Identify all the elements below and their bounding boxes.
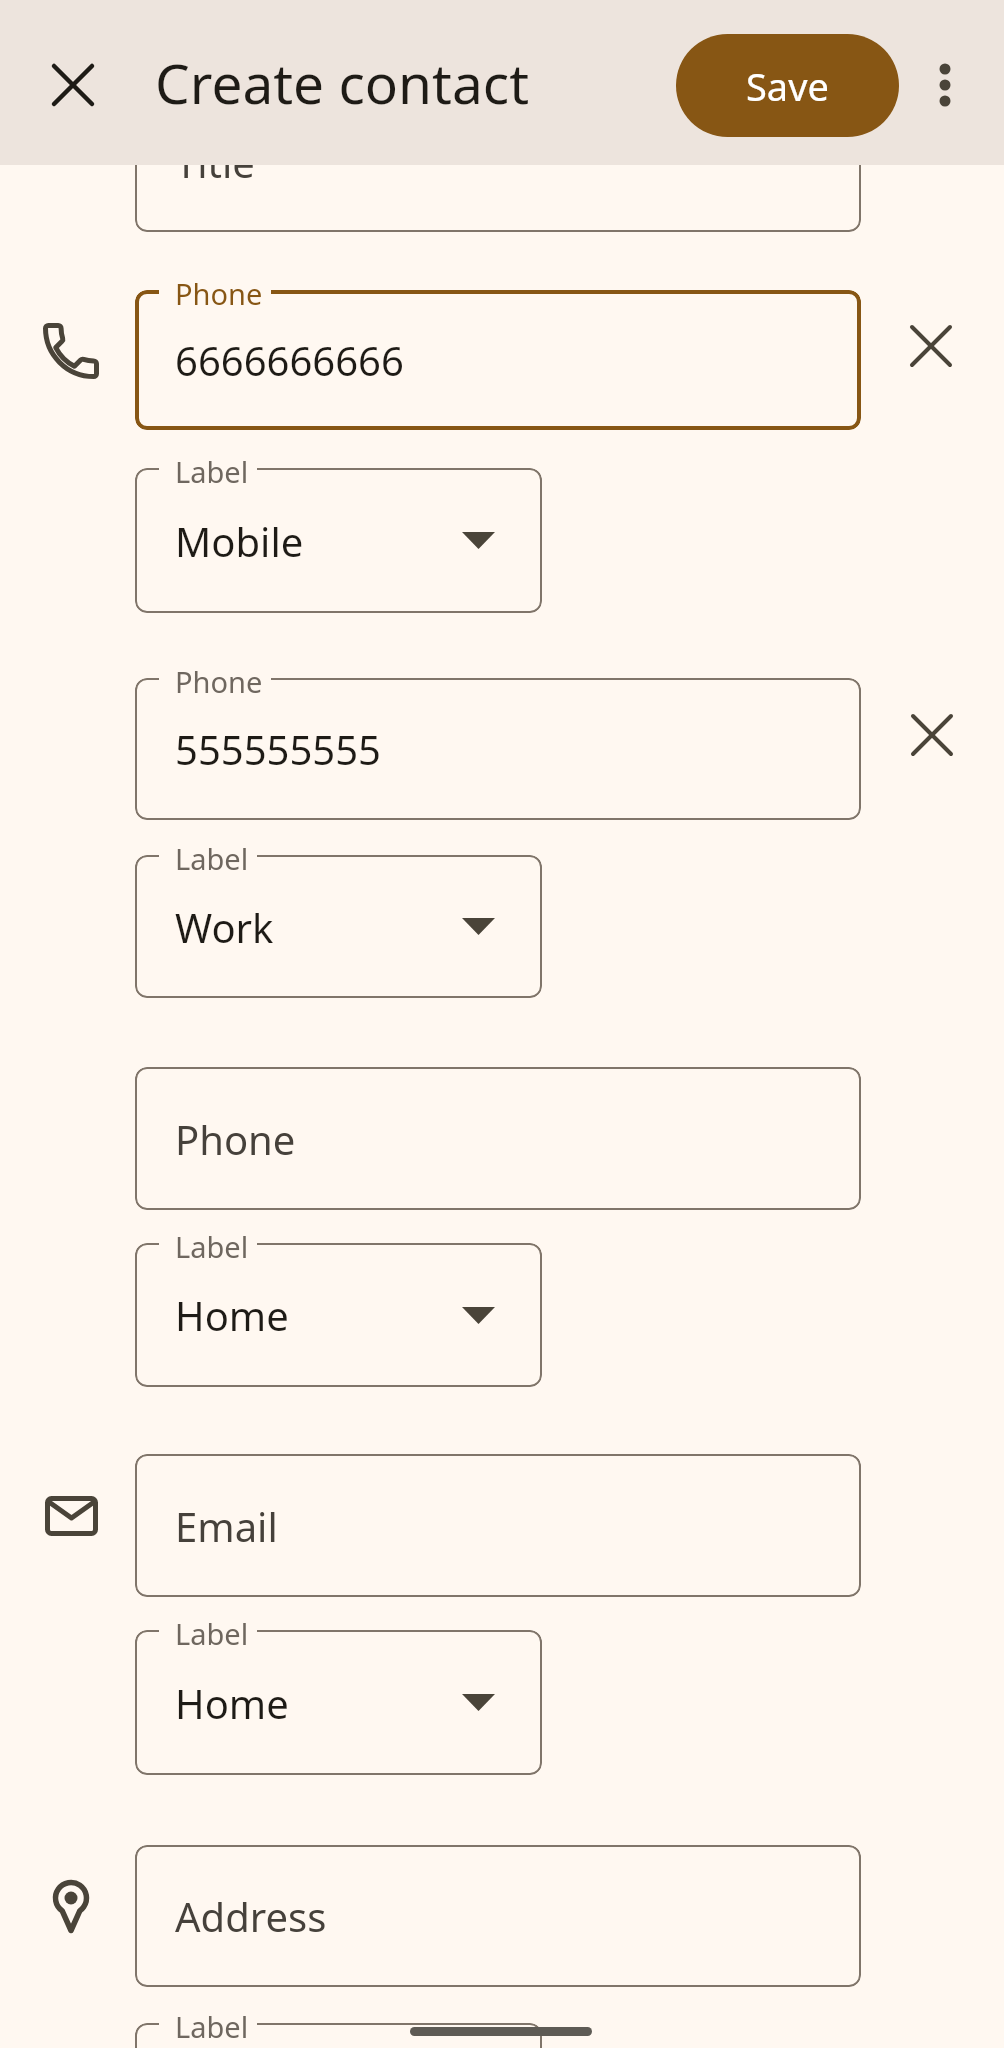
staticText: 555555555 xyxy=(175,722,381,776)
staticText: Address xyxy=(175,1889,327,1943)
button[interactable]: Work xyxy=(135,855,542,998)
staticText: Mobile xyxy=(175,514,304,568)
staticText: Label xyxy=(175,1614,249,1653)
staticText: Label xyxy=(175,452,249,491)
staticText: Label xyxy=(175,1227,249,1266)
button[interactable]: 555555555 xyxy=(135,678,861,820)
button[interactable] xyxy=(41,53,105,117)
button[interactable]: Save xyxy=(676,34,899,137)
staticText: Create contact xyxy=(155,45,530,120)
staticText: Email xyxy=(175,1499,278,1553)
staticText: Title xyxy=(175,135,255,189)
button[interactable] xyxy=(897,312,965,380)
staticText: Work xyxy=(175,900,274,954)
button[interactable]: Address xyxy=(135,1845,861,1987)
staticText: Label xyxy=(175,839,249,878)
button[interactable]: Email xyxy=(135,1454,861,1597)
button[interactable] xyxy=(898,701,966,769)
staticText: Phone xyxy=(175,274,263,313)
staticText: Save xyxy=(746,60,829,112)
button[interactable]: Mobile xyxy=(135,468,542,613)
button[interactable]: Home xyxy=(135,1630,542,1775)
button[interactable]: Home xyxy=(135,1243,542,1387)
button[interactable] xyxy=(913,53,977,117)
button[interactable]: 6666666666 xyxy=(135,290,861,430)
staticText: Phone xyxy=(175,1112,296,1166)
staticText: Label xyxy=(175,2007,249,2046)
staticText: Home xyxy=(175,1288,289,1342)
staticText: Phone xyxy=(175,662,263,701)
button[interactable]: Title xyxy=(135,92,861,232)
staticText: Home xyxy=(175,1676,289,1730)
button[interactable] xyxy=(135,2023,542,2048)
staticText: 6666666666 xyxy=(175,333,404,387)
button[interactable]: Phone xyxy=(135,1067,861,1210)
